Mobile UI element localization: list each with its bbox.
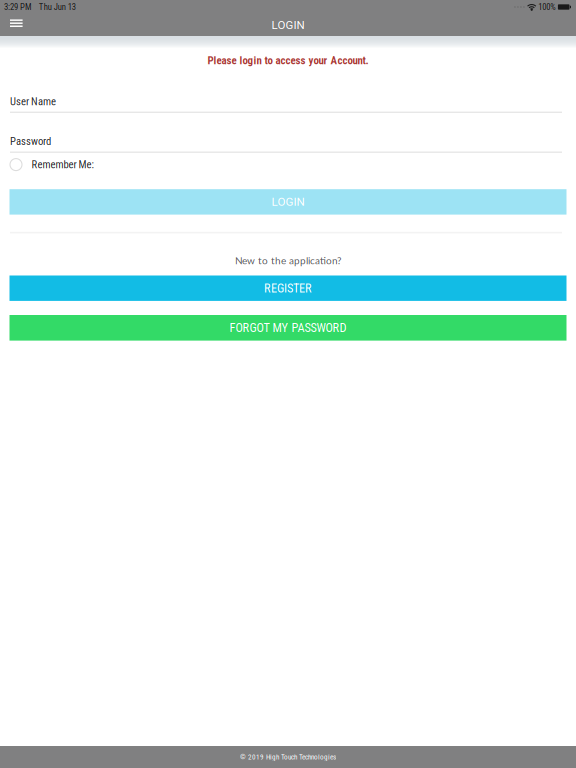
staticText: Please login to access your Account.: [207, 54, 368, 67]
button[interactable]: REGISTER: [9, 275, 566, 301]
staticText: LOGIN: [271, 18, 304, 32]
button[interactable]: LOGIN: [9, 189, 566, 215]
staticText: New to the application?: [235, 254, 341, 266]
button[interactable]: Remember Me:: [10, 157, 190, 173]
button[interactable]: Menu: [0, 14, 23, 36]
staticText: FORGOT MY PASSWORD: [229, 320, 346, 335]
staticText: Password: [10, 135, 51, 147]
staticText: Thu Jun 13: [39, 2, 76, 12]
staticText: REGISTER: [264, 281, 312, 295]
staticText: User Name: [10, 95, 56, 108]
staticText: LOGIN: [271, 195, 304, 209]
staticText: 100%: [538, 2, 555, 12]
staticText: © 2019 High Touch Technologies: [240, 753, 336, 761]
button[interactable]: FORGOT MY PASSWORD: [9, 315, 566, 341]
staticText: 3:29 PM: [4, 2, 32, 12]
staticText: Remember Me:: [31, 158, 93, 171]
